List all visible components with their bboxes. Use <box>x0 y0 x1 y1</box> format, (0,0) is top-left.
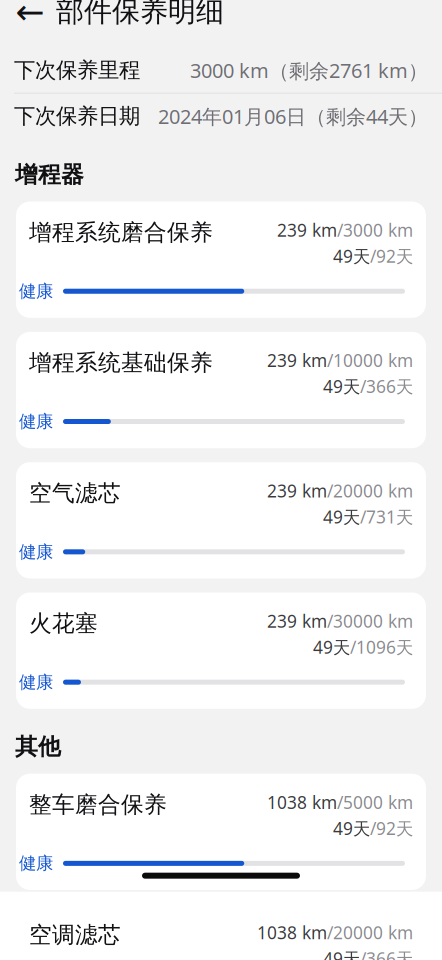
staticText: 1038 km <box>257 921 327 944</box>
button[interactable]: 增程系统磨合保养 <box>16 201 426 318</box>
staticText: 增程系统磨合保养 <box>29 218 213 246</box>
staticText: /10000 km <box>327 349 413 372</box>
staticText: 49天 <box>333 244 370 267</box>
staticText: ← <box>15 0 44 31</box>
staticText: 健康 <box>19 281 53 302</box>
staticText: 239 km <box>267 479 327 502</box>
staticText: 空气滤芯 <box>29 479 121 507</box>
staticText: /20000 km <box>327 479 413 502</box>
button[interactable]: 火花塞 <box>16 592 426 709</box>
staticText: 下次保养日期 <box>14 103 140 129</box>
staticText: 239 km <box>277 218 337 241</box>
staticText: 健康 <box>19 411 53 432</box>
button[interactable]: 空调滤芯 <box>16 904 426 960</box>
staticText: /5000 km <box>337 791 413 814</box>
staticText: 空调滤芯 <box>29 921 121 949</box>
staticText: 下次保养里程 <box>14 57 140 83</box>
staticText: 49天 <box>323 505 360 528</box>
staticText: /366天 <box>360 947 413 960</box>
button[interactable]: 增程系统基础保养 <box>16 332 426 448</box>
staticText: /366天 <box>360 375 413 398</box>
staticText: 健康 <box>19 853 53 874</box>
staticText: 1038 km <box>267 791 337 814</box>
staticText: 49天 <box>323 947 360 960</box>
staticText: /1096天 <box>350 635 413 658</box>
staticText: 2024年01月06日（剩余44天） <box>158 103 428 129</box>
staticText: /92天 <box>370 817 413 840</box>
button[interactable]: 空气滤芯 <box>16 462 426 578</box>
staticText: 健康 <box>19 671 53 693</box>
staticText: 火花塞 <box>29 609 98 637</box>
staticText: /731天 <box>360 505 413 528</box>
staticText: 3000 km（剩余2761 km） <box>190 57 428 84</box>
staticText: /92天 <box>370 244 413 267</box>
staticText: 健康 <box>19 541 53 562</box>
staticText: 239 km <box>267 609 327 632</box>
staticText: 增程器 <box>15 161 84 188</box>
button[interactable]: 整车磨合保养 <box>16 774 426 890</box>
staticText: /3000 km <box>337 218 413 241</box>
staticText: 增程系统基础保养 <box>29 349 213 377</box>
staticText: 49天 <box>313 635 350 658</box>
staticText: 其他 <box>15 733 61 761</box>
staticText: 49天 <box>333 817 370 840</box>
staticText: 部件保养明细 <box>56 0 224 29</box>
staticText: 整车磨合保养 <box>29 791 167 818</box>
staticText: 49天 <box>323 375 360 398</box>
staticText: 239 km <box>267 349 327 372</box>
staticText: /30000 km <box>327 609 413 632</box>
button[interactable]: 返回 <box>8 0 52 34</box>
staticText: /20000 km <box>327 921 413 944</box>
